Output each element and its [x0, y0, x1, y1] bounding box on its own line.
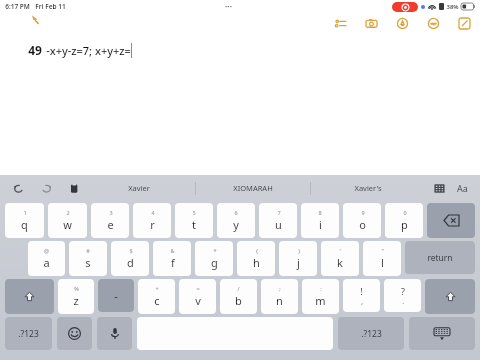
staticText: 2	[66, 209, 70, 216]
staticText: 5	[192, 209, 196, 216]
staticText: "	[381, 247, 384, 254]
staticText: f	[171, 255, 175, 270]
button[interactable]: Xavier's	[311, 175, 425, 201]
staticText: &	[170, 247, 175, 254]
button[interactable]: 6	[217, 203, 255, 238]
button[interactable]: =	[179, 279, 216, 314]
button[interactable]: @	[28, 241, 65, 276]
staticText: )	[298, 247, 300, 254]
staticText: t	[192, 217, 196, 232]
button[interactable]: *	[195, 241, 233, 276]
staticText: p	[401, 217, 408, 232]
button[interactable]: :	[302, 279, 339, 314]
button[interactable]: 4	[133, 203, 171, 238]
staticText: 8	[318, 209, 322, 216]
staticText: 4	[151, 209, 155, 216]
button[interactable]: Format options	[332, 15, 348, 31]
staticText: +	[155, 285, 159, 292]
staticText: ;	[279, 285, 281, 292]
button[interactable]: Dictation	[97, 317, 132, 350]
button[interactable]: %	[58, 279, 94, 314]
button[interactable]: Emoji	[57, 317, 92, 350]
button[interactable]: Redo	[38, 180, 54, 196]
button[interactable]: ;	[261, 279, 298, 314]
staticText: e	[107, 217, 114, 232]
button[interactable]: 0	[385, 203, 423, 238]
staticText: •••	[225, 3, 232, 11]
button[interactable]: #	[69, 241, 107, 276]
button[interactable]: Aa	[455, 180, 470, 196]
staticText: '	[339, 247, 341, 254]
button[interactable]: &	[153, 241, 191, 276]
button[interactable]: ?	[384, 279, 421, 312]
staticText: XIOMARAH	[233, 183, 273, 193]
staticText: b	[235, 293, 242, 308]
button[interactable]: Paste	[66, 180, 82, 196]
button[interactable]: $	[111, 241, 149, 276]
staticText: $	[129, 247, 133, 254]
button[interactable]: (	[237, 241, 275, 276]
button[interactable]: .?123	[5, 317, 52, 350]
staticText: %	[74, 285, 79, 292]
button[interactable]: !	[343, 279, 380, 312]
button[interactable]: 8	[301, 203, 339, 238]
staticText: i	[319, 217, 322, 232]
staticText: 38%	[446, 3, 459, 11]
staticText: 7	[277, 209, 281, 216]
staticText: ?	[401, 285, 405, 297]
staticText: k	[337, 255, 343, 270]
button[interactable]: Undo	[10, 180, 26, 196]
staticText: 49	[28, 42, 42, 58]
staticText: d	[127, 255, 134, 270]
staticText: j	[297, 255, 300, 270]
staticText: :	[320, 285, 322, 292]
staticText: o	[359, 217, 366, 232]
button[interactable]: return	[405, 241, 475, 274]
button[interactable]: '	[321, 241, 359, 276]
button[interactable]: Table	[431, 180, 447, 196]
button[interactable]: Hide keyboard	[409, 317, 475, 350]
staticText: s	[85, 255, 91, 270]
staticText: g	[211, 255, 218, 270]
staticText: v	[195, 293, 201, 308]
staticText: l	[381, 255, 384, 270]
button[interactable]: Camera	[363, 15, 379, 31]
button[interactable]: 9	[343, 203, 381, 238]
button[interactable]: )	[279, 241, 317, 276]
button[interactable]: Markup	[394, 15, 410, 31]
staticText: -	[114, 288, 118, 303]
staticText: (	[256, 247, 258, 254]
button[interactable]: Xavier	[82, 175, 195, 201]
button[interactable]: 1	[5, 203, 44, 238]
staticText: w	[63, 217, 72, 232]
staticText: 0	[403, 209, 407, 216]
button[interactable]: 3	[91, 203, 129, 238]
staticText: c	[154, 293, 160, 308]
button[interactable]: Compose	[456, 15, 472, 31]
button[interactable]: .?123	[338, 317, 404, 350]
button[interactable]: Backspace	[427, 203, 475, 238]
staticText: 1	[23, 209, 27, 216]
staticText: .	[402, 297, 404, 306]
button[interactable]: 7	[259, 203, 297, 238]
button[interactable]: Share	[425, 15, 441, 31]
staticText: .?123	[18, 328, 39, 340]
staticText: r	[150, 217, 155, 232]
staticText: Fri Feb 11	[35, 2, 66, 11]
button[interactable]: 5	[175, 203, 213, 238]
staticText: /	[237, 285, 240, 292]
button[interactable]: 2	[48, 203, 87, 238]
staticText: =	[196, 285, 200, 292]
button[interactable]: XIOMARAH	[196, 175, 310, 201]
staticText: -x+y-z=7; x+y+z=	[46, 43, 131, 58]
button[interactable]: Shift	[5, 279, 54, 314]
staticText: Xavier's	[354, 183, 382, 193]
button[interactable]: +	[138, 279, 175, 314]
button[interactable]: "	[363, 241, 401, 276]
staticText: 9	[361, 209, 365, 216]
staticText: 3	[109, 209, 113, 216]
button[interactable]: Shift	[425, 279, 475, 314]
button[interactable]: /	[220, 279, 257, 314]
button[interactable]: -	[98, 279, 134, 312]
